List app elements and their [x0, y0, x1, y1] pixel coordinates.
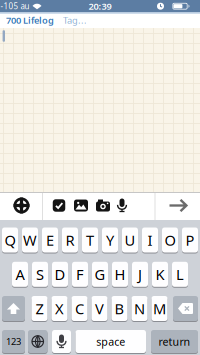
button[interactable]: C	[71, 296, 87, 321]
button[interactable]: Tag...	[63, 14, 87, 26]
staticText: L	[176, 265, 184, 284]
button[interactable]	[2, 296, 25, 321]
staticText: J	[138, 265, 142, 284]
staticText: A	[15, 265, 24, 284]
button[interactable]: D	[52, 262, 68, 287]
staticText: au	[20, 1, 29, 11]
button[interactable]: O	[162, 227, 178, 252]
staticText: O	[164, 230, 175, 250]
button[interactable]: A	[12, 262, 28, 287]
button[interactable]: L	[172, 262, 188, 287]
staticText: Y	[106, 230, 114, 250]
staticText: G	[94, 265, 105, 284]
staticText: 20:39	[88, 0, 111, 12]
button[interactable]: W	[22, 227, 38, 252]
staticText: space	[96, 334, 125, 349]
staticText: H	[114, 265, 125, 284]
button[interactable]	[53, 199, 65, 212]
button[interactable]	[28, 330, 47, 353]
staticText: E	[46, 230, 54, 250]
staticText: Q	[4, 230, 15, 250]
staticText: F	[76, 265, 84, 284]
button[interactable]: Y	[102, 227, 118, 252]
button[interactable]: U	[122, 227, 138, 252]
staticText: 700 Lifelog	[6, 14, 54, 26]
button[interactable]: N	[131, 296, 147, 321]
button[interactable]: G	[92, 262, 108, 287]
button[interactable]: R	[62, 227, 78, 252]
staticText: C	[75, 299, 84, 318]
button[interactable]	[169, 199, 187, 212]
staticText: D	[54, 265, 65, 284]
button[interactable]: F	[72, 262, 88, 287]
button[interactable]: P	[182, 227, 198, 252]
staticText: 123	[6, 335, 21, 348]
button[interactable]: Z	[31, 296, 47, 321]
staticText: U	[124, 230, 135, 250]
button[interactable]	[173, 296, 198, 321]
button[interactable]	[115, 198, 128, 212]
button[interactable]	[13, 197, 29, 213]
button[interactable]: Q	[2, 227, 18, 252]
button[interactable]: I	[142, 227, 158, 252]
button[interactable]: V	[91, 296, 107, 321]
button[interactable]	[52, 330, 71, 353]
button[interactable]: S	[32, 262, 48, 287]
button[interactable]: T	[82, 227, 98, 252]
staticText: B	[114, 299, 124, 318]
staticText: N	[134, 299, 145, 318]
button[interactable]: M	[151, 296, 167, 321]
staticText: S	[36, 265, 44, 284]
staticText: K	[155, 265, 164, 284]
button[interactable]: J	[132, 262, 148, 287]
staticText: T	[86, 230, 94, 250]
button[interactable]: 123	[2, 330, 25, 353]
button[interactable]: K	[152, 262, 168, 287]
staticText: M	[153, 299, 166, 318]
button[interactable]: space	[75, 330, 146, 353]
staticText: W	[23, 230, 37, 250]
button[interactable]: H	[112, 262, 128, 287]
button[interactable]: B	[111, 296, 127, 321]
staticText: R	[65, 230, 74, 250]
staticText: -105	[0, 1, 18, 11]
button[interactable]: return	[151, 330, 198, 353]
staticText: X	[55, 299, 64, 318]
staticText: I	[147, 230, 152, 250]
staticText: Z	[35, 299, 43, 318]
button[interactable]	[74, 199, 88, 211]
staticText: Tag...	[63, 14, 87, 26]
staticText: V	[95, 299, 104, 318]
staticText: P	[185, 230, 194, 250]
button[interactable]: X	[51, 296, 67, 321]
button[interactable]: E	[42, 227, 58, 252]
button[interactable]	[96, 198, 110, 211]
staticText: return	[158, 334, 190, 349]
